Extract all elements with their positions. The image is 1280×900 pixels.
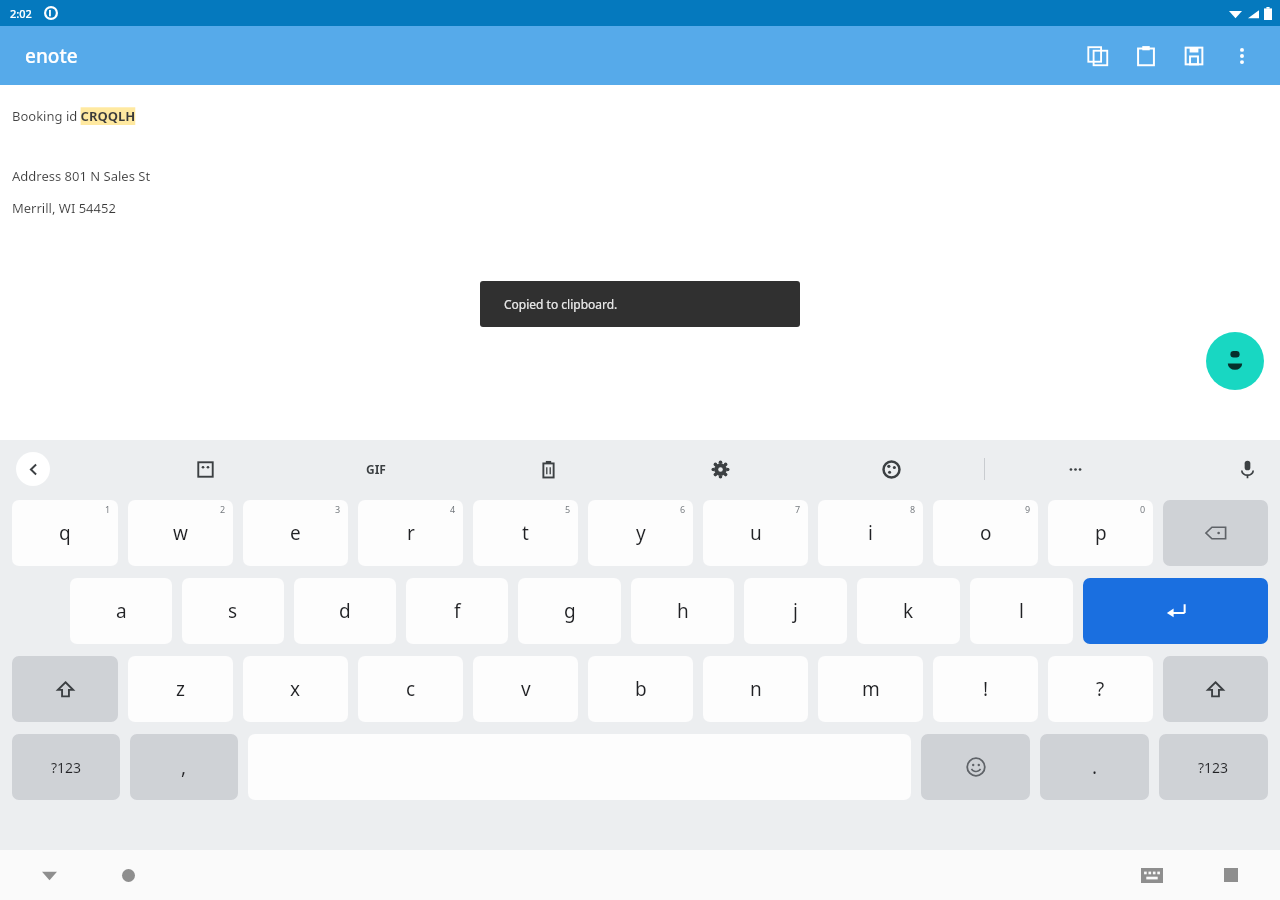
button[interactable]: Home <box>107 854 149 896</box>
staticText: enote <box>25 43 78 69</box>
staticText: ! <box>983 676 989 702</box>
button[interactable]: r <box>358 500 463 566</box>
staticText: m <box>862 676 880 702</box>
staticText: 3 <box>335 503 341 515</box>
staticText: f <box>454 598 461 624</box>
staticText: t <box>522 520 529 546</box>
button[interactable]: Save <box>1170 32 1218 80</box>
button[interactable]: d <box>294 578 396 644</box>
staticText: z <box>176 676 185 702</box>
staticText: n <box>750 676 762 702</box>
staticText: ?123 <box>51 758 82 777</box>
staticText: 7 <box>795 503 801 515</box>
staticText: c <box>406 676 416 702</box>
staticText: u <box>750 520 762 546</box>
staticText: a <box>116 598 127 624</box>
button[interactable]: Back <box>16 452 50 486</box>
button[interactable]: g <box>518 578 621 644</box>
button[interactable]: Shift <box>1163 656 1268 722</box>
button[interactable]: v <box>473 656 578 722</box>
staticText: Copied to clipboard. <box>504 296 618 312</box>
button[interactable]: z <box>128 656 233 722</box>
staticText: e <box>290 520 301 546</box>
button[interactable]: ! <box>933 656 1038 722</box>
button[interactable]: w <box>128 500 233 566</box>
staticText: Address 801 N Sales St <box>12 167 151 185</box>
button[interactable]: ?123 <box>1159 734 1268 800</box>
button[interactable]: Backspace <box>1163 500 1268 566</box>
button[interactable]: q <box>12 500 118 566</box>
button[interactable]: More options <box>1218 32 1266 80</box>
staticText: i <box>868 520 873 546</box>
staticText: l <box>1019 598 1024 624</box>
button[interactable]: j <box>744 578 847 644</box>
button[interactable]: Emoji <box>921 734 1030 800</box>
button[interactable]: Switch keyboard <box>1131 854 1173 896</box>
button[interactable]: Copy <box>1074 32 1122 80</box>
button[interactable]: p <box>1048 500 1153 566</box>
button[interactable]: x <box>243 656 348 722</box>
button[interactable]: Theme <box>870 448 912 490</box>
button[interactable]: GIF <box>355 448 397 490</box>
button[interactable]: Recent apps <box>1210 854 1252 896</box>
button[interactable]: a <box>70 578 172 644</box>
button[interactable]: u <box>703 500 808 566</box>
button[interactable]: s <box>182 578 284 644</box>
staticText: ? <box>1096 676 1105 702</box>
button[interactable]: e <box>243 500 348 566</box>
button[interactable]: b <box>588 656 693 722</box>
staticText: r <box>407 520 415 546</box>
staticText: p <box>1095 520 1107 546</box>
staticText: , <box>181 754 187 780</box>
button[interactable]: o <box>933 500 1038 566</box>
staticText: h <box>677 598 689 624</box>
button[interactable]: Shift <box>12 656 118 722</box>
button[interactable]: f <box>406 578 508 644</box>
button[interactable]: n <box>703 656 808 722</box>
button[interactable]: c <box>358 656 463 722</box>
staticText: k <box>903 598 914 624</box>
button[interactable]: Settings <box>699 448 741 490</box>
staticText: g <box>564 598 576 624</box>
staticText: x <box>290 676 301 702</box>
staticText: 5 <box>565 503 571 515</box>
button[interactable]: i <box>818 500 923 566</box>
button[interactable]: Voice typing <box>1226 448 1268 490</box>
staticText: j <box>793 598 798 624</box>
button[interactable]: ?123 <box>12 734 120 800</box>
staticText: v <box>521 676 531 702</box>
staticText: GIF <box>366 461 386 477</box>
button[interactable]: Voice input <box>1206 332 1264 390</box>
staticText: w <box>173 520 188 546</box>
button[interactable]: h <box>631 578 734 644</box>
staticText: 0 <box>1140 503 1146 515</box>
staticText: s <box>228 598 238 624</box>
button[interactable]: Clipboard <box>527 448 569 490</box>
staticText: 4 <box>450 503 456 515</box>
button[interactable]: ? <box>1048 656 1153 722</box>
staticText: o <box>980 520 992 546</box>
button[interactable]: Enter <box>1083 578 1268 644</box>
button[interactable]: Sticker <box>184 448 226 490</box>
button[interactable]: Paste <box>1122 32 1170 80</box>
staticText: 2:02 <box>10 6 32 21</box>
staticText: 6 <box>680 503 686 515</box>
staticText: 9 <box>1025 503 1031 515</box>
button[interactable]: Hide keyboard <box>28 854 70 896</box>
button[interactable]: k <box>857 578 960 644</box>
button[interactable]: l <box>970 578 1073 644</box>
button[interactable]: m <box>818 656 923 722</box>
staticText: y <box>636 520 646 546</box>
staticText: 8 <box>910 503 916 515</box>
button[interactable]: t <box>473 500 578 566</box>
button[interactable]: , <box>130 734 238 800</box>
button[interactable]: . <box>1040 734 1149 800</box>
staticText: 2 <box>220 503 226 515</box>
staticText: d <box>339 598 351 624</box>
staticText: Merrill, WI 54452 <box>12 199 116 217</box>
button[interactable]: More <box>1054 448 1096 490</box>
staticText: ?123 <box>1198 758 1229 777</box>
staticText: b <box>635 676 647 702</box>
button[interactable]: y <box>588 500 693 566</box>
